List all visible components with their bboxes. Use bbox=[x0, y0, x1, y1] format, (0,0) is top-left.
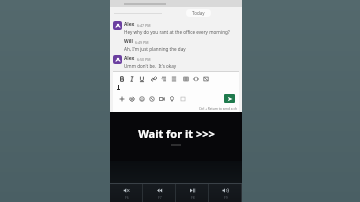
button[interactable]: Table bbox=[181, 74, 191, 83]
button[interactable]: Quote bbox=[159, 74, 169, 83]
button[interactable]: Location bbox=[167, 94, 177, 103]
staticText: 6:50 PM bbox=[137, 57, 151, 62]
button[interactable]: Add bbox=[117, 94, 127, 103]
button[interactable]: Mention bbox=[127, 94, 137, 103]
button[interactable]: Mute bbox=[110, 184, 143, 202]
button[interactable]: Send bbox=[224, 94, 235, 103]
button[interactable]: Sticker bbox=[147, 94, 157, 103]
button[interactable]: Link bbox=[149, 74, 159, 83]
staticText: Will bbox=[124, 38, 133, 45]
button[interactable]: Play or pause bbox=[176, 184, 209, 202]
staticText: Today bbox=[192, 10, 205, 16]
staticText: Hey why do you rant at the office every … bbox=[124, 29, 230, 35]
staticText: F9 bbox=[224, 195, 228, 200]
button[interactable]: Clear bbox=[201, 74, 211, 83]
button[interactable]: Today bbox=[186, 9, 211, 17]
button[interactable]: I bbox=[127, 74, 137, 83]
button[interactable]: Previous track bbox=[143, 184, 176, 202]
button[interactable]: More bbox=[178, 94, 188, 103]
button[interactable]: U bbox=[137, 74, 147, 83]
staticText: F7 bbox=[158, 195, 162, 200]
staticText: Ah, I'm just planning the day bbox=[124, 46, 186, 52]
button[interactable]: List bbox=[169, 74, 179, 83]
staticText: Alex bbox=[124, 21, 135, 28]
staticText: F8 bbox=[191, 195, 195, 200]
staticText: Wait for it >>> bbox=[138, 126, 215, 141]
staticText: Umm don't be. It's okay bbox=[124, 63, 177, 69]
staticText: Alex bbox=[124, 55, 135, 62]
button[interactable]: Video bbox=[157, 94, 167, 103]
staticText: 6:49 PM bbox=[135, 40, 149, 45]
staticText: Ctrl + Return to send a ch bbox=[199, 107, 237, 111]
staticText: F6 bbox=[125, 195, 129, 200]
button[interactable]: Profile picture bbox=[113, 21, 122, 30]
button[interactable]: Will bbox=[110, 37, 242, 52]
button[interactable]: Profile picture bbox=[110, 54, 242, 69]
button[interactable]: Profile picture bbox=[110, 20, 242, 35]
button[interactable]: Emoji bbox=[137, 94, 147, 103]
button[interactable]: Profile picture bbox=[113, 55, 122, 64]
button[interactable]: B bbox=[117, 74, 127, 83]
button[interactable]: Code bbox=[191, 74, 201, 83]
staticText: 6:47 PM bbox=[137, 23, 151, 28]
button[interactable]: Volume bbox=[209, 184, 242, 202]
